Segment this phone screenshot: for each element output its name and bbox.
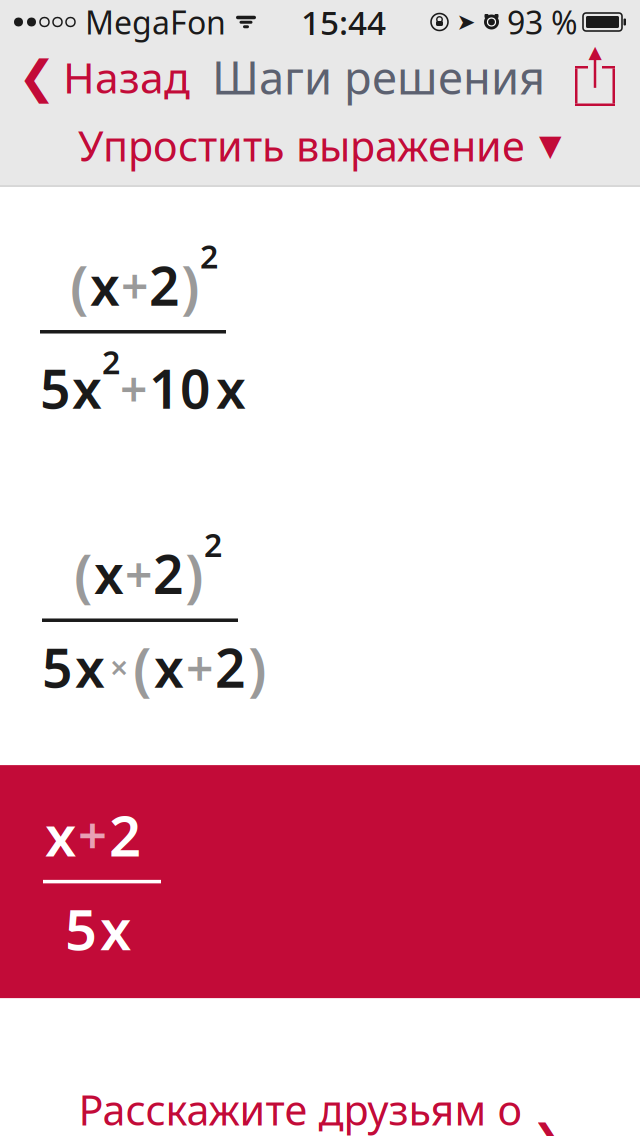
staticText: ): [185, 535, 204, 611]
staticText: (: [74, 535, 93, 611]
staticText: 5: [65, 891, 97, 966]
staticText: 2: [200, 235, 218, 277]
staticText: ▲: [588, 42, 601, 62]
staticText: 5: [40, 352, 71, 423]
button[interactable]: ❮: [0, 43, 190, 111]
staticText: ➤: [456, 9, 475, 35]
staticText: Упростить выражение: [78, 118, 525, 173]
staticText: Шаги решения: [212, 47, 545, 107]
staticText: 2: [215, 632, 246, 702]
staticText: x: [90, 249, 120, 320]
button[interactable]: Поделиться: [572, 44, 640, 110]
staticText: ): [181, 247, 200, 323]
staticText: 2: [109, 797, 141, 872]
staticText: Расскажите друзьям о Photomath: [78, 1082, 522, 1136]
staticText: +: [78, 801, 107, 868]
staticText: ×: [110, 646, 128, 688]
staticText: 2: [153, 538, 184, 609]
staticText: Назад: [63, 49, 190, 105]
staticText: x: [45, 797, 76, 872]
staticText: 2: [204, 523, 222, 566]
staticText: 2: [102, 340, 120, 383]
staticText: +: [121, 253, 148, 317]
staticText: ): [248, 629, 267, 705]
staticText: ▼: [539, 129, 562, 162]
staticText: ❯: [532, 1117, 561, 1136]
staticText: 10: [149, 352, 211, 423]
staticText: 2: [149, 249, 180, 320]
staticText: ❮: [18, 51, 56, 103]
button[interactable]: Упростить выражение: [0, 110, 640, 181]
staticText: MegaFon: [85, 1, 226, 43]
staticText: (: [70, 247, 89, 323]
staticText: 93 %: [507, 1, 578, 43]
button[interactable]: Расскажите друзьям о Photomath: [0, 1068, 640, 1136]
staticText: 15:44: [301, 0, 386, 44]
staticText: (: [133, 629, 152, 705]
staticText: x: [154, 632, 184, 702]
staticText: +: [186, 635, 213, 699]
staticText: +: [125, 541, 152, 605]
staticText: x: [94, 538, 124, 609]
staticText: +: [120, 356, 147, 420]
staticText: 5: [42, 632, 73, 702]
staticText: x: [75, 632, 105, 702]
staticText: x: [216, 352, 246, 423]
staticText: x: [100, 891, 131, 966]
staticText: x: [72, 352, 102, 423]
